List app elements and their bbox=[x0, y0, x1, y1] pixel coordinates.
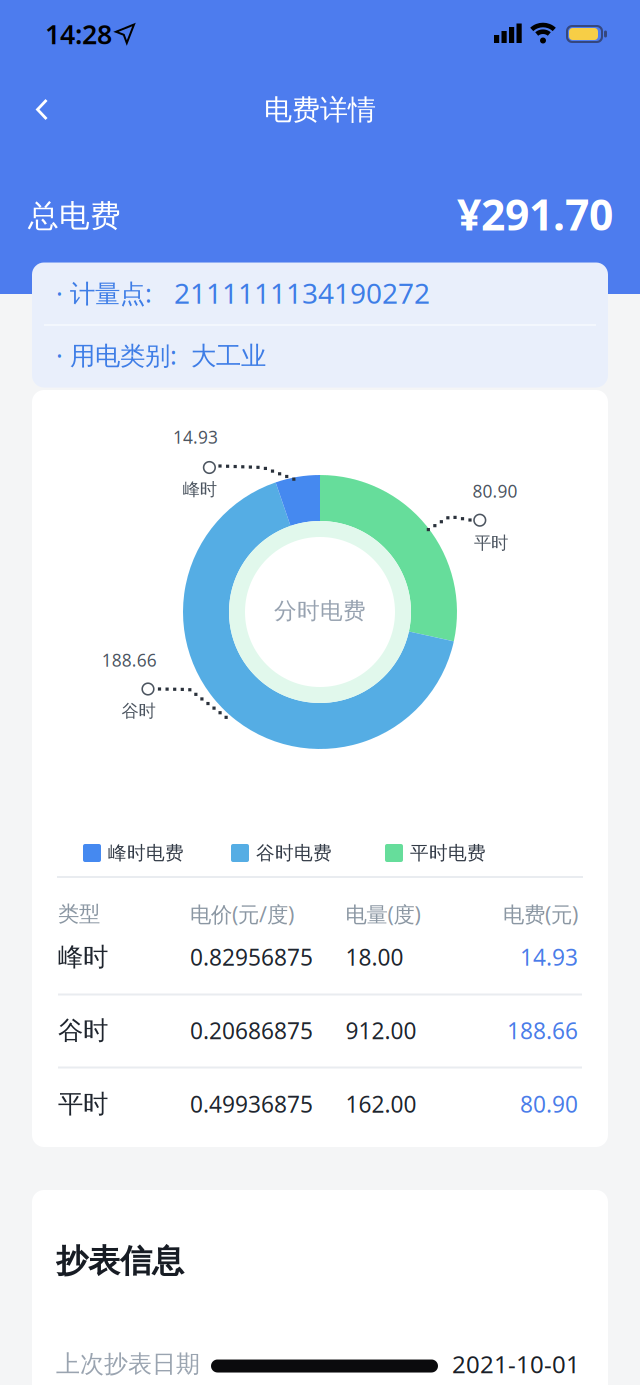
staticText: 14.93 bbox=[173, 425, 218, 448]
staticText: 上次抄表日期 bbox=[56, 1349, 200, 1379]
staticText: 总电费 bbox=[28, 197, 121, 235]
staticText: 2111111134190272 bbox=[174, 274, 430, 312]
staticText: 2021-10-01 bbox=[452, 1348, 580, 1380]
staticText: 谷时电费 bbox=[256, 841, 332, 864]
staticText: 0.20686875 bbox=[190, 1015, 313, 1045]
staticText: 峰时电费 bbox=[108, 841, 184, 864]
staticText: 162.00 bbox=[345, 1089, 416, 1119]
staticText: 分时电费 bbox=[274, 597, 366, 625]
staticText: 14:28 bbox=[45, 16, 112, 52]
staticText: 平时电费 bbox=[410, 841, 486, 864]
staticText: 188.66 bbox=[507, 1015, 578, 1045]
staticText: 平时 bbox=[474, 532, 508, 554]
button[interactable]: Back bbox=[10, 77, 74, 141]
staticText: 峰时 bbox=[183, 479, 217, 500]
staticText: 抄表信息 bbox=[56, 1241, 184, 1281]
staticText: 80.90 bbox=[520, 1089, 578, 1119]
staticText: 0.82956875 bbox=[190, 942, 313, 972]
staticText: 912.00 bbox=[345, 1015, 416, 1045]
staticText: 80.90 bbox=[472, 479, 517, 502]
staticText: 18.00 bbox=[345, 942, 403, 972]
staticText: 0.49936875 bbox=[190, 1089, 313, 1119]
staticText: 电价(元/度) bbox=[190, 900, 294, 928]
staticText: 谷时 bbox=[58, 1015, 108, 1046]
staticText: 电费(元) bbox=[503, 900, 578, 928]
staticText: 谷时 bbox=[122, 700, 156, 722]
staticText: 类型 bbox=[58, 901, 100, 927]
staticText: 14.93 bbox=[520, 942, 578, 972]
staticText: · 计量点: bbox=[56, 276, 152, 310]
staticText: · 用电类别: 大工业 bbox=[56, 338, 266, 372]
staticText: 峰时 bbox=[58, 941, 108, 972]
staticText: ¥291.70 bbox=[457, 186, 613, 242]
staticText: 电量(度) bbox=[345, 900, 420, 928]
staticText: 电费详情 bbox=[264, 93, 376, 127]
staticText: 188.66 bbox=[102, 648, 157, 671]
staticText: 平时 bbox=[58, 1088, 108, 1119]
